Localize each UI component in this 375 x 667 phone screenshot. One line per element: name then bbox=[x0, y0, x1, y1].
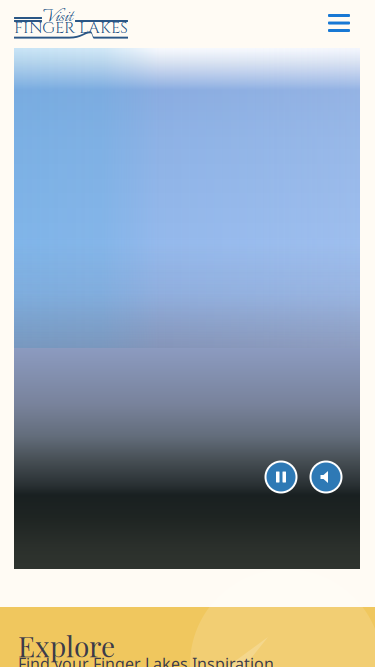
staticText: Find your Finger Lakes Inspiration bbox=[18, 653, 274, 667]
button[interactable]: Menu bbox=[319, 4, 359, 42]
staticText: Explore bbox=[18, 627, 115, 664]
staticText: Visit bbox=[43, 3, 72, 31]
button[interactable]: Visit Finger Lakes, home bbox=[14, 5, 128, 41]
button[interactable]: Pause bbox=[263, 459, 299, 495]
button[interactable]: Mute bbox=[308, 459, 344, 495]
staticText: FINGER LAKES bbox=[14, 17, 128, 39]
